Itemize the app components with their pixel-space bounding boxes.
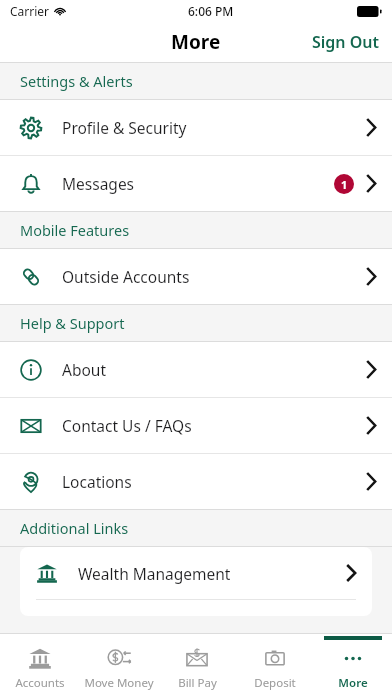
staticText: Bill Pay [178, 675, 217, 691]
staticText: Wealth Management [78, 563, 231, 584]
staticText: Sign Out [312, 31, 380, 53]
staticText: 6:06 PM [188, 3, 234, 19]
staticText: Accounts [15, 675, 65, 691]
staticText: Locations [62, 471, 132, 492]
button[interactable]: More [314, 634, 392, 696]
staticText: About [62, 359, 106, 380]
button[interactable]: Move Money [79, 634, 158, 696]
button[interactable]: Messages [0, 156, 392, 211]
staticText: Profile & Security [62, 117, 187, 138]
staticText: Outside Accounts [62, 266, 190, 287]
button[interactable]: Bill Pay [158, 634, 236, 696]
staticText: Carrier [10, 3, 50, 19]
button[interactable]: About [0, 342, 392, 397]
staticText: Messages [62, 173, 135, 194]
button[interactable]: Deposit [236, 634, 314, 696]
button[interactable]: Outside Accounts [0, 249, 392, 304]
button[interactable]: Locations [0, 454, 392, 509]
button[interactable]: Accounts [0, 634, 79, 696]
staticText: Additional Links [20, 518, 129, 538]
button[interactable]: Sign Out [300, 23, 392, 61]
button[interactable]: Wealth Management [20, 547, 372, 599]
button[interactable]: Profile & Security [0, 100, 392, 155]
staticText: Mobile Features [20, 220, 130, 240]
staticText: Settings & Alerts [20, 71, 133, 91]
staticText: 1 [341, 177, 348, 192]
staticText: Help & Support [20, 313, 125, 333]
staticText: More [338, 675, 368, 691]
staticText: Contact Us / FAQs [62, 415, 192, 436]
staticText: Deposit [254, 675, 296, 691]
button[interactable]: Contact Us / FAQs [0, 398, 392, 453]
staticText: Move Money [84, 675, 154, 691]
staticText: More [171, 29, 221, 55]
